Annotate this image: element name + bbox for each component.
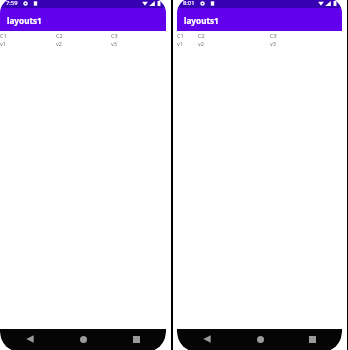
staticText: layouts1 (7, 15, 42, 26)
staticText: layouts1 (184, 15, 219, 26)
staticText: v3 (111, 40, 117, 47)
staticText: C2 (56, 32, 63, 39)
staticText: 7:59 (6, 0, 18, 7)
staticText: v1 (0, 40, 6, 47)
staticText: C3 (111, 32, 118, 39)
staticText: 8:01 (183, 0, 195, 7)
button[interactable]: Recents (305, 332, 319, 346)
button[interactable]: Back (200, 332, 214, 346)
button[interactable]: C2 (198, 31, 205, 47)
button[interactable]: C3 (111, 31, 166, 47)
staticText: C2 (198, 32, 205, 39)
button[interactable]: Home (253, 332, 267, 346)
button[interactable]: C2 (56, 31, 111, 47)
staticText: v2 (56, 40, 62, 47)
staticText: v2 (198, 40, 204, 47)
button[interactable]: Back (23, 332, 37, 346)
staticText: C3 (270, 32, 277, 39)
staticText: v3 (270, 40, 276, 47)
button[interactable]: Recents (129, 332, 143, 346)
button[interactable]: C3 (270, 31, 277, 47)
staticText: C1 (177, 32, 184, 39)
staticText: v1 (177, 40, 183, 47)
button[interactable]: C1 (0, 31, 56, 47)
button[interactable]: layouts1 (177, 8, 342, 31)
staticText: C1 (0, 32, 7, 39)
button[interactable]: C1 (177, 31, 184, 47)
button[interactable]: Home (76, 332, 90, 346)
button[interactable]: layouts1 (0, 8, 166, 31)
